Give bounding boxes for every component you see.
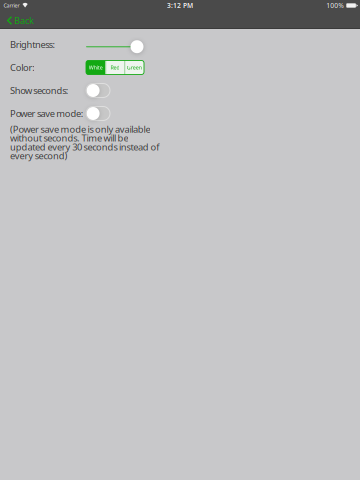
staticText: Color: — [10, 61, 35, 74]
staticText: Power save mode: — [10, 107, 84, 120]
staticText: White — [89, 64, 103, 71]
staticText: Show seconds: — [10, 84, 69, 97]
staticText: Green — [127, 64, 142, 71]
button[interactable]: Toggle — [86, 83, 110, 97]
button[interactable]: White — [86, 60, 105, 74]
staticText: Carrier — [3, 2, 19, 9]
staticText: Back — [14, 14, 34, 27]
button[interactable]: Red — [105, 60, 124, 74]
staticText: 3:12 PM — [167, 1, 193, 10]
button[interactable]: Back — [0, 11, 40, 29]
button[interactable]: Brightness — [86, 40, 144, 54]
staticText: Red — [110, 64, 119, 71]
staticText: 100% — [326, 1, 344, 10]
staticText: Brightness: — [10, 38, 55, 51]
button[interactable]: Green — [124, 60, 144, 74]
button[interactable]: Toggle — [86, 106, 110, 120]
staticText: (Power save mode is only available witho… — [10, 123, 159, 162]
